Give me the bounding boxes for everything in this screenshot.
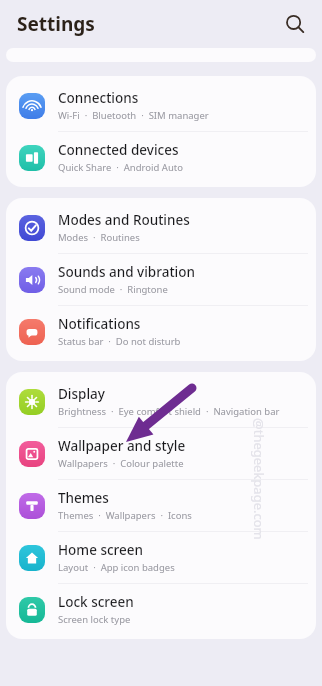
- staticText: Sounds and vibration: [58, 263, 195, 281]
- button[interactable]: Themes: [6, 480, 316, 531]
- staticText: Wallpapers · Colour palette: [58, 457, 184, 470]
- staticText: Brightness · Eye comfort shield · Naviga…: [58, 405, 280, 418]
- button[interactable]: Display: [6, 376, 316, 427]
- staticText: Modes · Routines: [58, 231, 140, 244]
- staticText: Connected devices: [58, 141, 179, 159]
- staticText: Wi-Fi · Bluetooth · SIM manager: [58, 109, 209, 122]
- staticText: Layout · App icon badges: [58, 561, 175, 574]
- button[interactable]: Modes and Routines: [6, 202, 316, 253]
- button[interactable]: Notifications: [6, 306, 316, 357]
- button[interactable]: Wallpaper and style: [6, 428, 316, 479]
- button[interactable]: Connected devices: [6, 132, 316, 183]
- staticText: Connections: [58, 89, 139, 107]
- button[interactable]: Home screen: [6, 532, 316, 583]
- button[interactable]: Connections: [6, 80, 316, 131]
- staticText: Wallpaper and style: [58, 437, 186, 455]
- button[interactable]: Sounds and vibration: [6, 254, 316, 305]
- staticText: Quick Share · Android Auto: [58, 161, 183, 174]
- staticText: @thegeekpage.com: [250, 418, 268, 540]
- staticText: Settings: [17, 11, 95, 37]
- staticText: Modes and Routines: [58, 211, 190, 229]
- staticText: Status bar · Do not disturb: [58, 335, 181, 348]
- staticText: Sound mode · Ringtone: [58, 283, 168, 296]
- staticText: Screen lock type: [58, 613, 131, 626]
- button[interactable]: Lock screen: [6, 584, 316, 635]
- staticText: Themes · Wallpapers · Icons: [58, 509, 192, 522]
- staticText: Lock screen: [58, 593, 134, 611]
- button[interactable]: Search: [278, 7, 312, 41]
- staticText: Notifications: [58, 315, 141, 333]
- staticText: Themes: [58, 489, 109, 507]
- staticText: Display: [58, 385, 105, 403]
- staticText: Home screen: [58, 541, 143, 559]
